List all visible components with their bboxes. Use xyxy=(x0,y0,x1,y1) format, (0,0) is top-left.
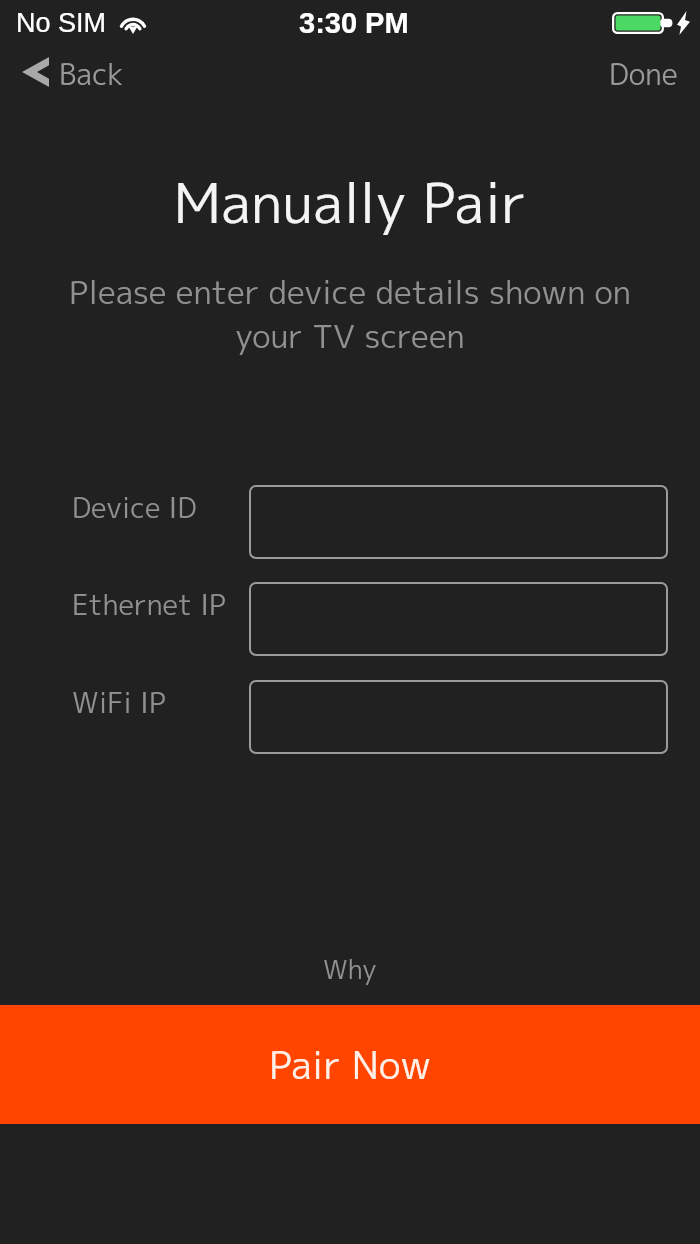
button[interactable]: Device ID xyxy=(249,485,668,559)
button[interactable]: Done xyxy=(589,48,700,100)
staticText: 3:30 PM xyxy=(299,7,409,39)
button[interactable]: Ethernet IP xyxy=(249,582,668,656)
staticText: Device ID xyxy=(72,488,197,527)
staticText: No SIM xyxy=(16,8,107,38)
button[interactable]: Pair Now xyxy=(0,1005,700,1124)
staticText: Back xyxy=(59,54,124,94)
button[interactable]: WiFi IP xyxy=(249,680,668,754)
staticText: Done xyxy=(609,54,678,94)
staticText: Ethernet IP xyxy=(72,585,226,624)
button[interactable]: Why xyxy=(0,947,700,1005)
button[interactable]: Back xyxy=(0,48,142,100)
staticText: Pair Now xyxy=(269,1038,431,1091)
staticText: WiFi IP xyxy=(72,683,166,722)
staticText: Please enter device details shown on you… xyxy=(0,270,700,358)
staticText: Why xyxy=(323,951,377,987)
staticText: Manually Pair xyxy=(0,164,700,241)
